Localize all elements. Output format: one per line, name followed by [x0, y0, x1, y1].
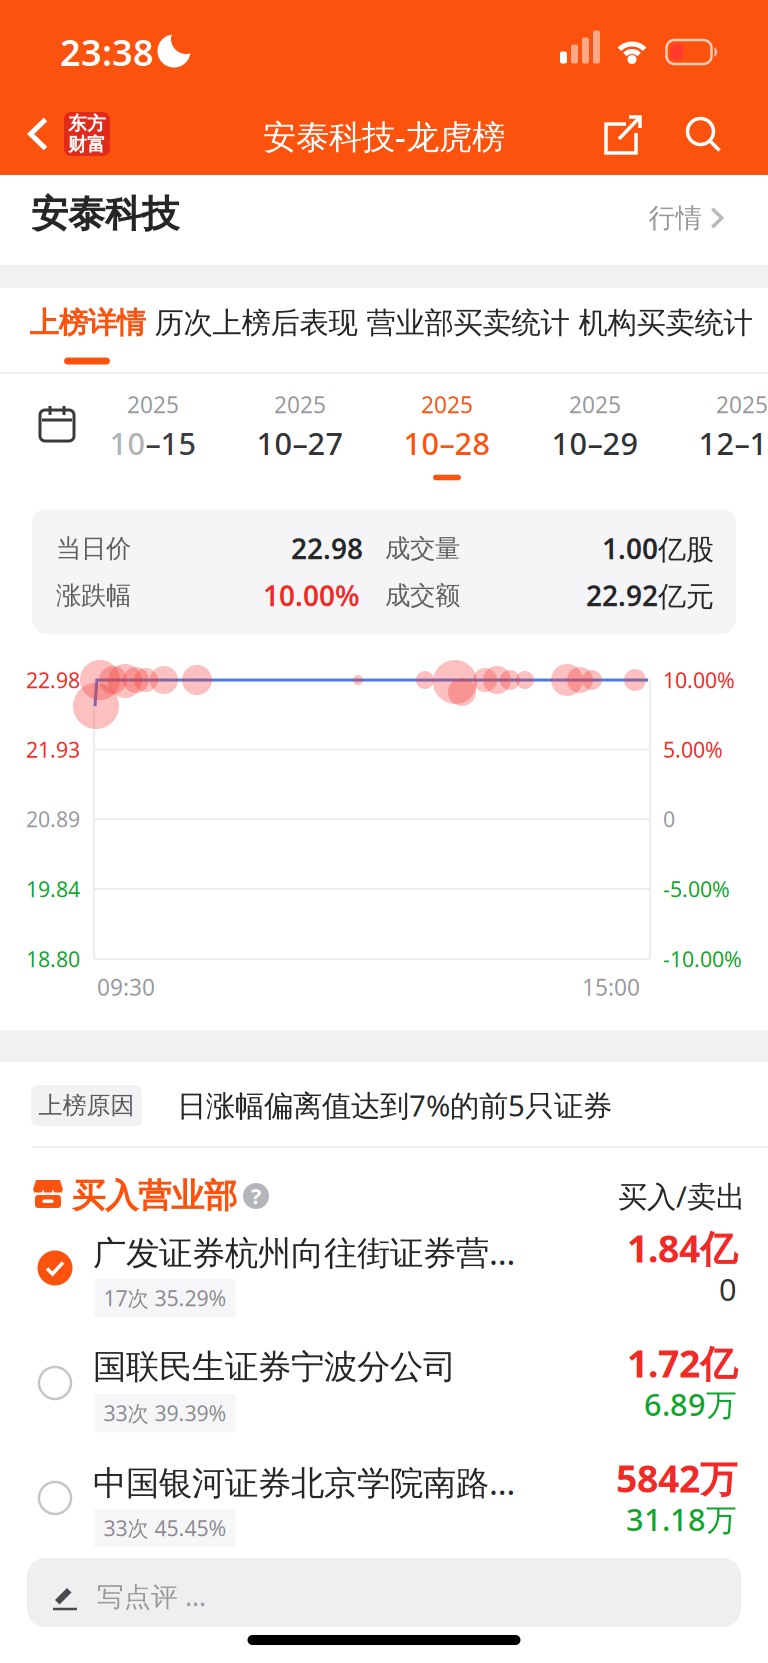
staticText: 5842万	[616, 1453, 737, 1503]
staticText: 国联民生证券宁波分公司	[93, 1346, 456, 1387]
staticText: 17次 35.29%	[103, 1284, 226, 1312]
button[interactable]: 营业部买卖统计	[366, 305, 569, 341]
staticText: 22.98	[291, 530, 363, 567]
button[interactable]: 搜索	[684, 115, 721, 152]
staticText: 10	[109, 423, 145, 463]
staticText: 财富	[68, 133, 106, 156]
staticText: 2025	[569, 389, 621, 419]
staticText: 2025	[421, 389, 473, 419]
staticText: 22.92亿元	[586, 577, 714, 614]
staticText: 安泰科技-龙虎榜	[263, 114, 505, 158]
staticText: 2025	[274, 389, 326, 419]
staticText: 10.00%	[663, 666, 735, 694]
staticText: 20.89	[26, 805, 80, 833]
staticText: 东方	[68, 112, 106, 135]
staticText: 买入/卖出	[618, 1176, 745, 1215]
button[interactable]: 中国银河证券北京学院南路…	[0, 1460, 768, 1558]
staticText: -10.00%	[663, 945, 742, 973]
staticText: 日涨幅偏离值达到7%的前5只证券	[177, 1085, 612, 1124]
staticText: 15:00	[582, 972, 640, 1002]
staticText: 1.00亿股	[602, 530, 714, 567]
button[interactable]: 东方财富	[64, 112, 110, 156]
staticText: 12–12	[698, 423, 768, 463]
staticText: 10.00%	[263, 577, 360, 614]
button[interactable]: 国联民生证券宁波分公司	[0, 1345, 768, 1460]
staticText: 19.84	[26, 875, 80, 903]
staticText: 中国银河证券北京学院南路…	[93, 1460, 515, 1504]
button[interactable]: 说明	[243, 1183, 269, 1209]
button[interactable]: 返回	[28, 117, 48, 151]
staticText: 历次上榜后表现	[154, 305, 357, 341]
staticText: –15	[145, 423, 196, 463]
button[interactable]: 上榜详情	[29, 305, 145, 341]
staticText: 成交额	[385, 580, 460, 611]
staticText: 上榜原因	[38, 1091, 134, 1120]
staticText: 09:30	[97, 972, 155, 1002]
staticText: 上榜详情	[29, 305, 145, 341]
button[interactable]: 2025	[672, 373, 768, 508]
button[interactable]: 广发证券杭州向往街证券营…	[0, 1230, 768, 1345]
staticText: 10–29	[551, 423, 638, 463]
staticText: 0	[663, 805, 675, 833]
staticText: 买入营业部	[72, 1175, 237, 1216]
staticText: 10–28	[403, 423, 490, 463]
staticText: -5.00%	[663, 875, 730, 903]
staticText: 5.00%	[663, 735, 723, 764]
staticText: ?	[251, 1182, 261, 1210]
staticText: 成交量	[385, 533, 460, 564]
button[interactable]: 2025	[525, 373, 665, 508]
staticText: 1.84亿	[627, 1223, 737, 1273]
staticText: 当日价	[56, 533, 131, 564]
staticText: 33次 45.45%	[103, 1514, 226, 1542]
button[interactable]: 历次上榜后表现	[154, 305, 357, 341]
staticText: 涨跌幅	[56, 580, 131, 611]
button[interactable]: 写点评	[27, 1558, 741, 1627]
staticText: 21.93	[26, 735, 80, 764]
staticText: 机构买卖统计	[578, 305, 752, 341]
staticText: 10–27	[256, 423, 343, 463]
staticText: 广发证券杭州向往街证券营…	[93, 1230, 515, 1274]
staticText: 31.18万	[626, 1499, 737, 1539]
staticText: 写点评 ...	[97, 1578, 206, 1614]
button[interactable]: 2025	[230, 373, 370, 508]
button[interactable]: 行情	[648, 202, 723, 234]
button[interactable]: 2025	[83, 373, 223, 508]
staticText: 22.98	[26, 666, 80, 694]
staticText: 0	[719, 1269, 737, 1309]
staticText: 6.89万	[644, 1384, 737, 1424]
button[interactable]: 选择日期	[37, 404, 77, 444]
staticText: 33次 39.39%	[103, 1399, 226, 1427]
button[interactable]: 机构买卖统计	[578, 305, 752, 341]
staticText: 23:38	[60, 28, 154, 76]
staticText: 2025	[716, 389, 768, 419]
button[interactable]: 分享	[604, 115, 642, 155]
staticText: 2025	[127, 389, 179, 419]
staticText: 行情	[648, 202, 702, 234]
staticText: 1.72亿	[627, 1338, 737, 1388]
staticText: 安泰科技	[31, 191, 179, 237]
button[interactable]: 2025	[377, 373, 517, 508]
staticText: 营业部买卖统计	[366, 305, 569, 341]
staticText: 18.80	[26, 945, 80, 973]
